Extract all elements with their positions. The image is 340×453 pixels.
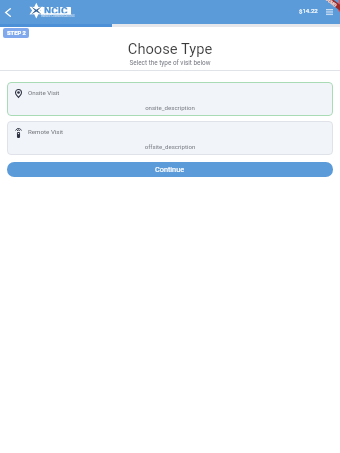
button[interactable]: Menu — [323, 4, 336, 19]
staticText: offsite_description — [7, 143, 333, 150]
staticText: NCIC — [44, 7, 68, 13]
staticText: DEMO — [325, 0, 338, 8]
staticText: Onsite Visit — [28, 89, 60, 96]
staticText: Remote Visit — [28, 128, 64, 135]
button[interactable]: Remote Visit — [7, 121, 333, 155]
staticText: INMATE COMMUNICATIONS — [41, 15, 75, 18]
staticText: onsite_description — [7, 104, 333, 111]
staticText: STEP 2 — [7, 30, 26, 37]
staticText: Select the type of visit below — [0, 59, 340, 67]
button[interactable]: STEP 2 — [3, 28, 29, 38]
staticText: $14.22 — [299, 7, 318, 14]
button[interactable]: Continue — [7, 162, 333, 177]
staticText: Continue — [155, 165, 185, 174]
button[interactable]: Back — [0, 0, 15, 24]
button[interactable]: Onsite Visit — [7, 82, 333, 116]
staticText: Choose Type — [0, 40, 340, 57]
